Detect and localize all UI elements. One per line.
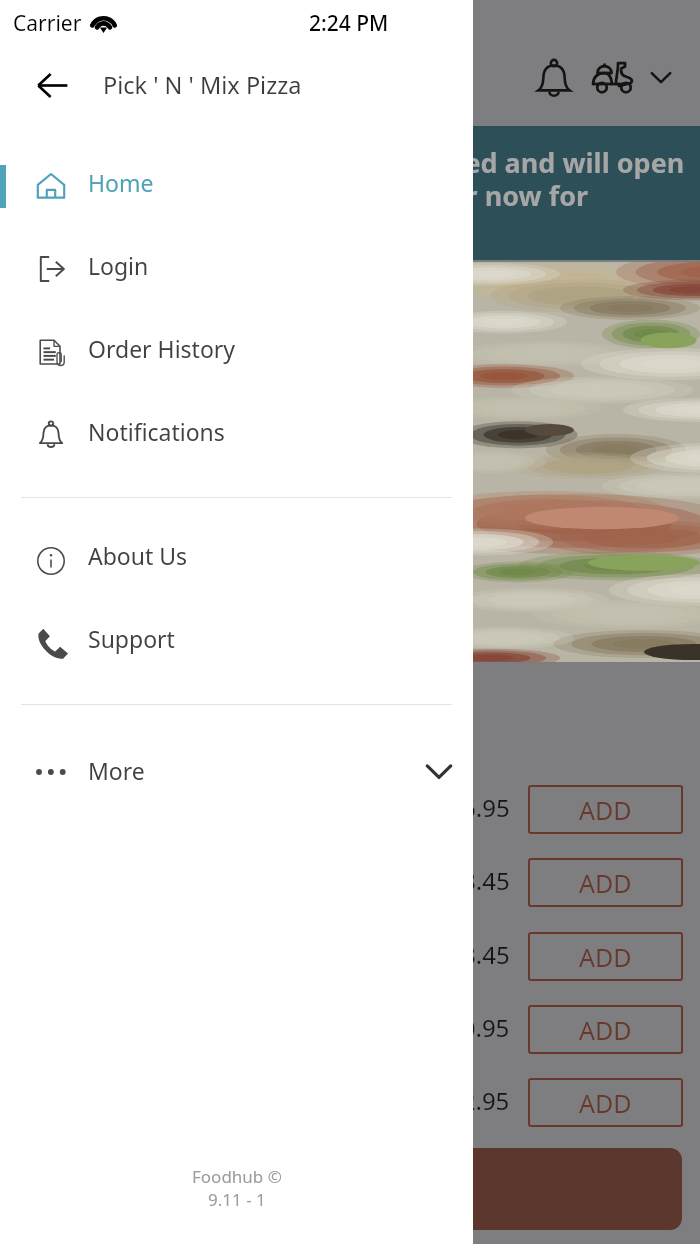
button[interactable]: ADD xyxy=(528,785,683,834)
button[interactable]: Delivery xyxy=(589,50,639,100)
staticText: ADD xyxy=(579,866,632,900)
staticText: Carrier xyxy=(13,9,82,38)
button[interactable]: ADD xyxy=(528,858,683,907)
staticText: 8.45 xyxy=(462,938,510,971)
button[interactable]: ADD xyxy=(528,1078,683,1127)
staticText: Home xyxy=(88,167,154,198)
staticText: Pick ' N ' Mix Pizza xyxy=(103,69,302,101)
button[interactable] xyxy=(430,1148,682,1230)
staticText: order now for xyxy=(404,177,589,214)
button[interactable]: Back xyxy=(22,55,82,115)
button[interactable]: ADD xyxy=(528,932,683,981)
button[interactable]: More xyxy=(0,733,473,816)
staticText: 2:24 PM xyxy=(309,9,389,38)
staticText: ADD xyxy=(579,793,632,827)
staticText: closed and will open xyxy=(412,144,685,181)
button[interactable]: Notifications xyxy=(530,55,578,103)
button[interactable]: Support xyxy=(0,601,473,684)
staticText: Support xyxy=(88,623,175,654)
staticText: Notifications xyxy=(88,416,225,447)
button[interactable]: About Us xyxy=(0,518,473,601)
staticText: More xyxy=(88,755,145,786)
button[interactable]: Home xyxy=(0,145,473,228)
staticText: About Us xyxy=(88,540,188,571)
staticText: ADD xyxy=(579,1013,632,1047)
staticText: 10.95 xyxy=(448,1011,510,1044)
staticText: 6.95 xyxy=(462,791,510,824)
button[interactable]: Notifications xyxy=(0,394,473,477)
button[interactable]: Order History xyxy=(0,311,473,394)
staticText: ADD xyxy=(579,940,632,974)
staticText: ADD xyxy=(579,1086,632,1120)
staticText: 8.45 xyxy=(462,864,510,897)
button[interactable]: Expand xyxy=(650,66,672,88)
staticText: Foodhub © xyxy=(192,1165,282,1188)
staticText: Login xyxy=(88,250,149,281)
button[interactable]: Login xyxy=(0,228,473,311)
staticText: 9.11 - 1 xyxy=(208,1188,266,1211)
staticText: Order History xyxy=(88,333,236,364)
staticText: 12.95 xyxy=(448,1084,510,1117)
button[interactable]: ADD xyxy=(528,1005,683,1054)
